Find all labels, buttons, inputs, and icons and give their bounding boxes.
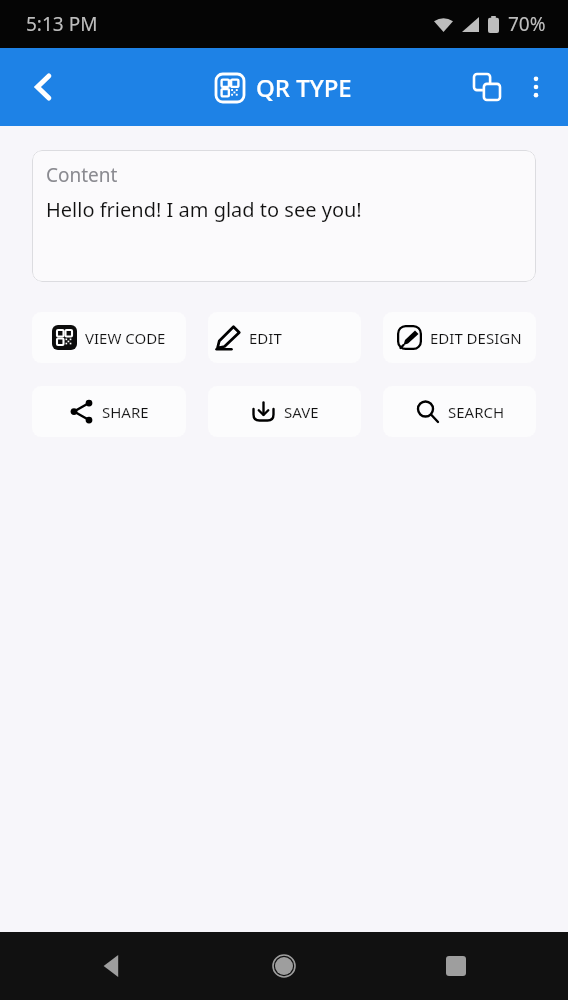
- button[interactable]: Recents: [434, 944, 478, 988]
- staticText: 5:13 PM: [26, 11, 98, 37]
- button[interactable]: SAVE: [208, 386, 361, 437]
- button[interactable]: Copy: [462, 62, 512, 112]
- staticText: SHARE: [102, 402, 149, 422]
- staticText: EDIT CONTENT: [249, 328, 353, 348]
- staticText: EDIT DESIGN: [430, 328, 522, 348]
- button[interactable]: SHARE: [32, 386, 186, 437]
- button[interactable]: More options: [512, 63, 560, 111]
- button[interactable]: EDIT DESIGN: [383, 312, 536, 363]
- staticText: SEARCH: [448, 402, 505, 422]
- staticText: QR TYPE: [256, 71, 352, 104]
- button[interactable]: Back: [16, 59, 72, 115]
- button[interactable]: VIEW CODE: [32, 312, 186, 363]
- staticText: VIEW CODE: [85, 328, 166, 348]
- button[interactable]: Back: [90, 944, 134, 988]
- button[interactable]: Content: [32, 150, 536, 282]
- button[interactable]: EDIT CONTENT: [208, 312, 361, 363]
- button[interactable]: Home: [262, 944, 306, 988]
- staticText: Content: [46, 162, 118, 188]
- staticText: SAVE: [284, 402, 319, 422]
- staticText: 70%: [508, 11, 546, 37]
- staticText: Hello friend! I am glad to see you!: [46, 196, 362, 223]
- button[interactable]: SEARCH: [383, 386, 536, 437]
